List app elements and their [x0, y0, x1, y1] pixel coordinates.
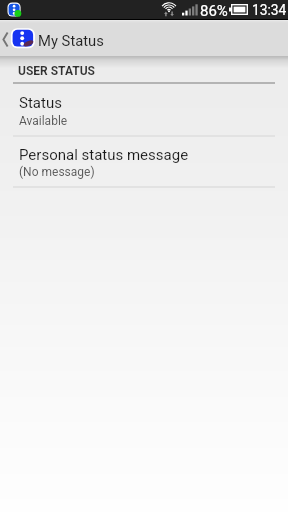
button[interactable]: Navigate up	[1, 28, 35, 51]
staticText: 86%	[200, 2, 228, 20]
button[interactable]: Status	[0, 84, 288, 135]
staticText: Personal status message	[19, 146, 189, 164]
staticText: Status	[19, 94, 62, 112]
button[interactable]: Personal status message	[0, 137, 288, 186]
staticText: Available	[19, 114, 68, 128]
staticText: USER STATUS	[18, 64, 95, 78]
staticText: (No message)	[19, 165, 95, 179]
staticText: 13:34	[252, 2, 287, 18]
staticText: My Status	[38, 32, 104, 49]
